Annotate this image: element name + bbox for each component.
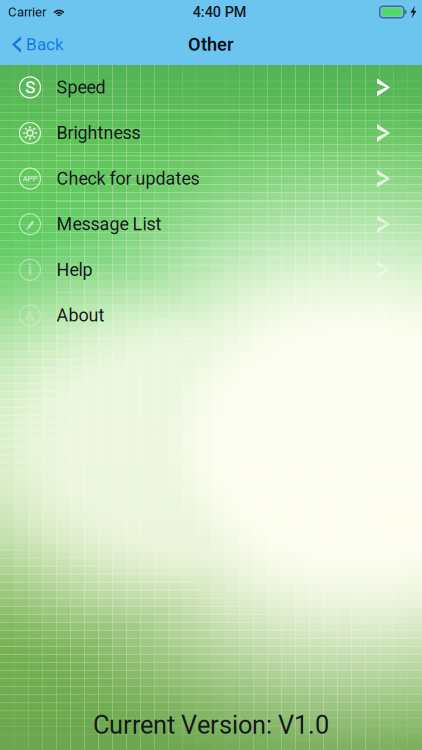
button[interactable]: Message List bbox=[0, 202, 422, 247]
staticText: Current Version: V1.0 bbox=[93, 710, 329, 740]
button[interactable]: Brightness bbox=[0, 111, 422, 155]
staticText: Brightness bbox=[56, 122, 140, 143]
button[interactable]: APP bbox=[0, 156, 422, 201]
staticText: Speed bbox=[56, 77, 105, 98]
staticText: Check for updates bbox=[56, 168, 199, 189]
staticText: APP bbox=[22, 174, 37, 183]
button[interactable]: i bbox=[0, 247, 422, 292]
staticText: 4:40 PM bbox=[193, 4, 247, 20]
staticText: Help bbox=[56, 259, 92, 280]
staticText: Back bbox=[26, 34, 64, 54]
staticText: About bbox=[56, 305, 104, 326]
button[interactable]: Back bbox=[0, 24, 74, 65]
staticText: i bbox=[28, 260, 32, 279]
staticText: S bbox=[25, 77, 35, 97]
button[interactable]: A bbox=[0, 293, 422, 338]
staticText: Other bbox=[188, 34, 234, 55]
staticText: A bbox=[25, 308, 34, 323]
button[interactable]: S bbox=[0, 65, 422, 110]
staticText: Message List bbox=[56, 214, 161, 235]
staticText: Carrier bbox=[8, 4, 46, 20]
